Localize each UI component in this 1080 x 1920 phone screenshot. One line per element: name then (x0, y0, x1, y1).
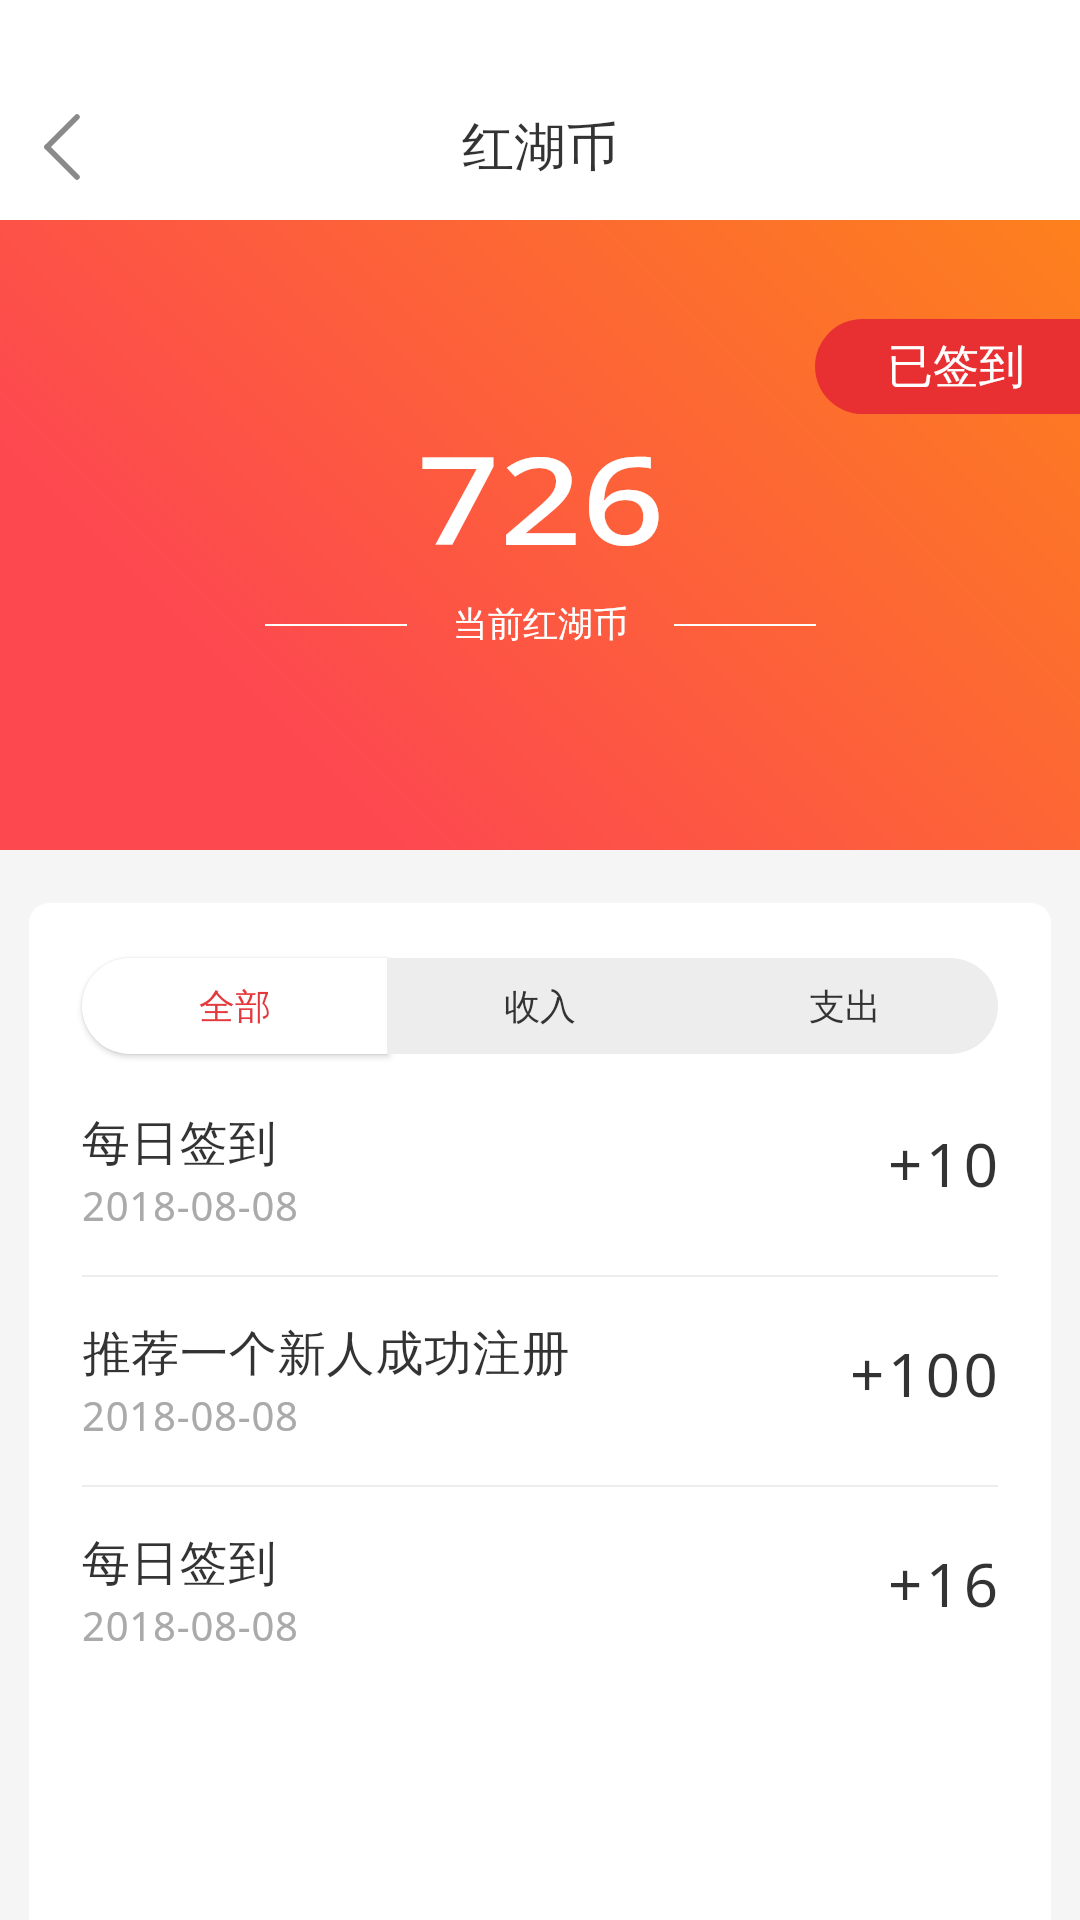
staticText: 2018-08-08 (82, 1598, 299, 1652)
staticText: 每日签到 (82, 1534, 278, 1594)
staticText: 已签到 (887, 338, 1025, 396)
button[interactable]: 支出 (692, 958, 998, 1054)
staticText: 全部 (199, 984, 271, 1029)
staticText: 当前红湖币 (453, 602, 628, 646)
staticText: 红湖币 (462, 115, 618, 181)
button[interactable]: Back (0, 74, 124, 220)
button[interactable]: 推荐一个新人成功注册 (82, 1277, 998, 1485)
button[interactable]: 每日签到 (82, 1487, 998, 1695)
staticText: 726 (417, 416, 665, 581)
staticText: +100 (850, 1333, 1002, 1415)
button[interactable]: 全部 (82, 958, 387, 1054)
staticText: +10 (888, 1123, 1002, 1205)
staticText: 2018-08-08 (82, 1178, 299, 1232)
staticText: 支出 (809, 984, 881, 1029)
staticText: 每日签到 (82, 1114, 278, 1174)
button[interactable]: 每日签到 (82, 1067, 998, 1275)
staticText: 推荐一个新人成功注册 (82, 1324, 570, 1384)
staticText: +16 (888, 1543, 1002, 1625)
button[interactable]: 收入 (387, 958, 692, 1054)
button[interactable]: 已签到 (815, 319, 1080, 414)
staticText: 收入 (504, 984, 576, 1029)
staticText: 2018-08-08 (82, 1388, 299, 1442)
